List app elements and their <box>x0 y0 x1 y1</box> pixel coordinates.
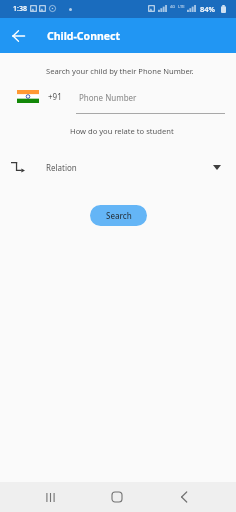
staticText: How do you relate to student <box>70 126 174 136</box>
button[interactable]: Search <box>90 205 147 226</box>
staticText: 84% <box>200 4 215 14</box>
staticText: Relation <box>46 162 77 173</box>
staticText: Search <box>106 210 132 221</box>
button[interactable]: Country code +91 <box>15 87 67 105</box>
staticText: Phone Number <box>79 92 137 103</box>
button[interactable]: Back <box>0 18 37 53</box>
staticText: LTE <box>178 4 185 9</box>
staticText: 1:38 <box>13 4 27 14</box>
staticText: Search your child by their Phone Number. <box>46 66 194 76</box>
staticText: +91 <box>48 91 62 102</box>
staticText: Child-Connect <box>47 29 121 43</box>
button[interactable]: Phone Number <box>76 85 225 114</box>
staticText: 4G <box>170 4 176 9</box>
button[interactable]: Relation <box>0 160 236 174</box>
button[interactable]: Recent apps <box>27 482 73 512</box>
button[interactable]: Home <box>94 482 140 512</box>
button[interactable]: Back <box>161 482 207 512</box>
